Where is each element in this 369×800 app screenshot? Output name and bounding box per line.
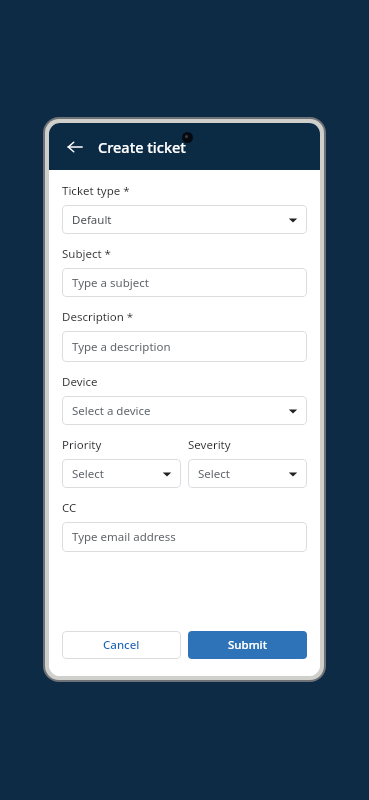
staticText: Type a subject	[72, 275, 298, 291]
staticText: Cancel	[103, 637, 140, 653]
button[interactable]: Submit	[188, 631, 307, 659]
staticText: Select	[198, 466, 288, 482]
button[interactable]: Select a device	[62, 396, 307, 425]
staticText: Select a device	[72, 403, 288, 419]
staticText: Select	[72, 466, 162, 482]
staticText: Severity	[188, 437, 231, 453]
staticText: Priority	[62, 437, 102, 453]
staticText: Ticket type *	[62, 183, 130, 199]
staticText: Submit	[228, 637, 268, 653]
button[interactable]: Default	[62, 205, 307, 234]
staticText: CC	[62, 500, 77, 516]
button[interactable]: Type a subject	[62, 268, 307, 297]
staticText: Subject *	[62, 246, 111, 262]
button[interactable]: Select	[62, 459, 181, 488]
button[interactable]: Back	[61, 133, 89, 161]
staticText: Default	[72, 212, 288, 228]
staticText: Device	[62, 374, 98, 390]
button[interactable]: Type email address	[62, 522, 307, 552]
button[interactable]: Cancel	[62, 631, 181, 659]
staticText: Type a description	[72, 339, 298, 355]
staticText: Type email address	[72, 529, 298, 545]
button[interactable]: Type a description	[62, 331, 307, 362]
staticText: Create ticket	[98, 137, 186, 157]
staticText: Description *	[62, 309, 134, 325]
button[interactable]: Select	[188, 459, 307, 488]
